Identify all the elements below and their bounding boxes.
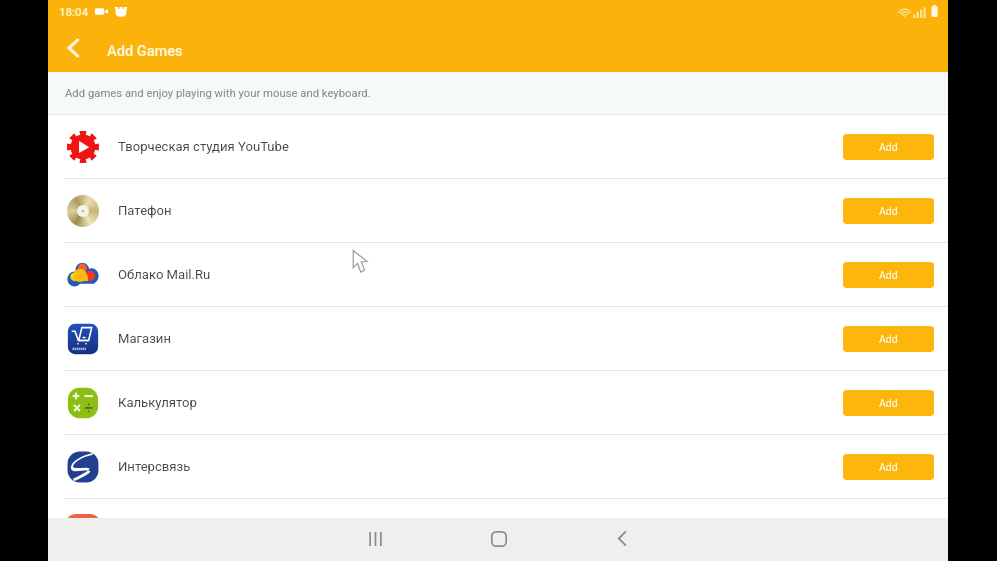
staticText: Облако Mail.Ru [118, 267, 211, 282]
staticText: Add [879, 141, 898, 153]
button[interactable]: Add [843, 326, 934, 352]
button[interactable]: Творческая студия YouTube [48, 115, 948, 178]
button[interactable]: Add [843, 198, 934, 224]
staticText: Add [879, 205, 898, 217]
staticText: Add [879, 333, 898, 345]
button[interactable]: Калькулятор [48, 371, 948, 434]
button[interactable]: Add [843, 134, 934, 160]
staticText: Магазин [118, 331, 171, 346]
button[interactable]: Интерсвязь [48, 435, 948, 498]
staticText: Add Games [107, 42, 183, 59]
button[interactable]: Back [48, 28, 98, 72]
staticText: Add [879, 269, 898, 281]
button[interactable]: Облако Mail.Ru [48, 243, 948, 306]
staticText: Add games and enjoy playing with your mo… [65, 87, 371, 100]
button[interactable]: Магазин [48, 307, 948, 370]
button[interactable]: Add [843, 390, 934, 416]
button[interactable]: Патефон [48, 179, 948, 242]
button[interactable]: Recents [354, 517, 397, 560]
button[interactable]: Add [843, 262, 934, 288]
button[interactable]: Home [477, 517, 520, 560]
button[interactable]: Add [843, 454, 934, 480]
staticText: Патефон [118, 203, 172, 218]
staticText: Add [879, 397, 898, 409]
staticText: Творческая студия YouTube [118, 139, 289, 154]
staticText: 18:04 [59, 5, 89, 18]
staticText: Калькулятор [118, 395, 197, 410]
staticText: Add [879, 461, 898, 473]
button[interactable]: Back [600, 517, 643, 560]
staticText: Интерсвязь [118, 459, 191, 474]
